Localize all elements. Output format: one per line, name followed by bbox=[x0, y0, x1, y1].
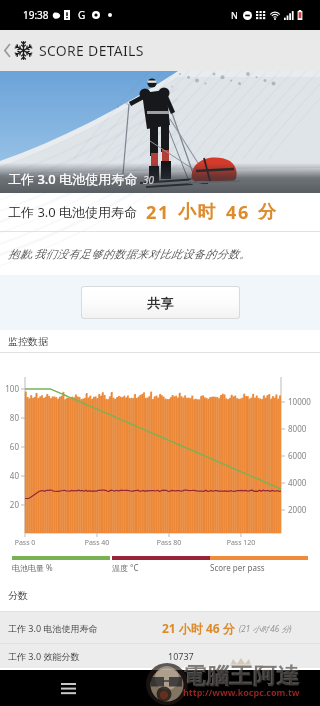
staticText: 工作 3.0 电池使用寿命 bbox=[8, 622, 98, 634]
staticText: Score per pass bbox=[210, 562, 265, 573]
staticText: http://www.kocpc.com.tw bbox=[183, 686, 300, 698]
staticText: 8000 bbox=[288, 423, 307, 434]
staticText: SCORE DETAILS bbox=[39, 41, 144, 60]
staticText: (21 小时 46 分) bbox=[239, 623, 292, 634]
staticText: 電腦王阿達 bbox=[182, 661, 300, 690]
staticText: 共享 bbox=[147, 295, 175, 311]
button[interactable]: Menu bbox=[52, 670, 84, 706]
staticText: 小时 bbox=[178, 201, 218, 224]
button[interactable]: 共享 bbox=[82, 287, 239, 318]
staticText: 工作 3.0 电池使用寿命 bbox=[8, 170, 138, 188]
staticText: 20 bbox=[0, 499, 19, 510]
staticText: 监控数据 bbox=[8, 335, 48, 348]
staticText: 19:38 bbox=[23, 8, 49, 22]
staticText: 10000 bbox=[288, 396, 311, 407]
staticText: 60 bbox=[0, 441, 19, 452]
staticText: 80 bbox=[0, 412, 19, 423]
button[interactable]: 工作 3.0 效能分数 bbox=[0, 644, 320, 668]
staticText: 46 bbox=[226, 200, 250, 225]
staticText: 工作 3.0 电池使用寿命 bbox=[8, 203, 138, 221]
staticText: 温度 °C bbox=[112, 562, 139, 573]
staticText: 21 小时 46 分 bbox=[162, 620, 235, 636]
staticText: G bbox=[78, 8, 86, 22]
staticText: 40 bbox=[0, 470, 19, 481]
staticText: 电池电量 % bbox=[12, 562, 53, 573]
staticText: 2000 bbox=[288, 504, 307, 515]
staticText: 10737 bbox=[168, 650, 194, 662]
staticText: Pass 0 bbox=[8, 538, 42, 548]
staticText: 分数 bbox=[8, 589, 28, 602]
button[interactable]: 工作 3.0 电池使用寿命 bbox=[0, 612, 320, 643]
staticText: 21 bbox=[146, 200, 170, 225]
button[interactable]: Back bbox=[0, 30, 14, 71]
staticText: 30 bbox=[143, 173, 155, 187]
staticText: 分 bbox=[258, 201, 278, 224]
staticText: 電腦王阿達 bbox=[183, 662, 301, 691]
staticText: Pass 40 bbox=[80, 538, 114, 548]
staticText: Pass 120 bbox=[224, 538, 258, 548]
staticText: N bbox=[231, 9, 238, 21]
staticText: 工作 3.0 效能分数 bbox=[8, 650, 80, 662]
staticText: 抱歉,我们没有足够的数据来对比此设备的分数。 bbox=[8, 246, 251, 261]
staticText: 100 bbox=[0, 383, 19, 394]
staticText: 4000 bbox=[288, 477, 307, 488]
staticText: Pass 80 bbox=[152, 538, 186, 548]
staticText: 6000 bbox=[288, 450, 307, 461]
